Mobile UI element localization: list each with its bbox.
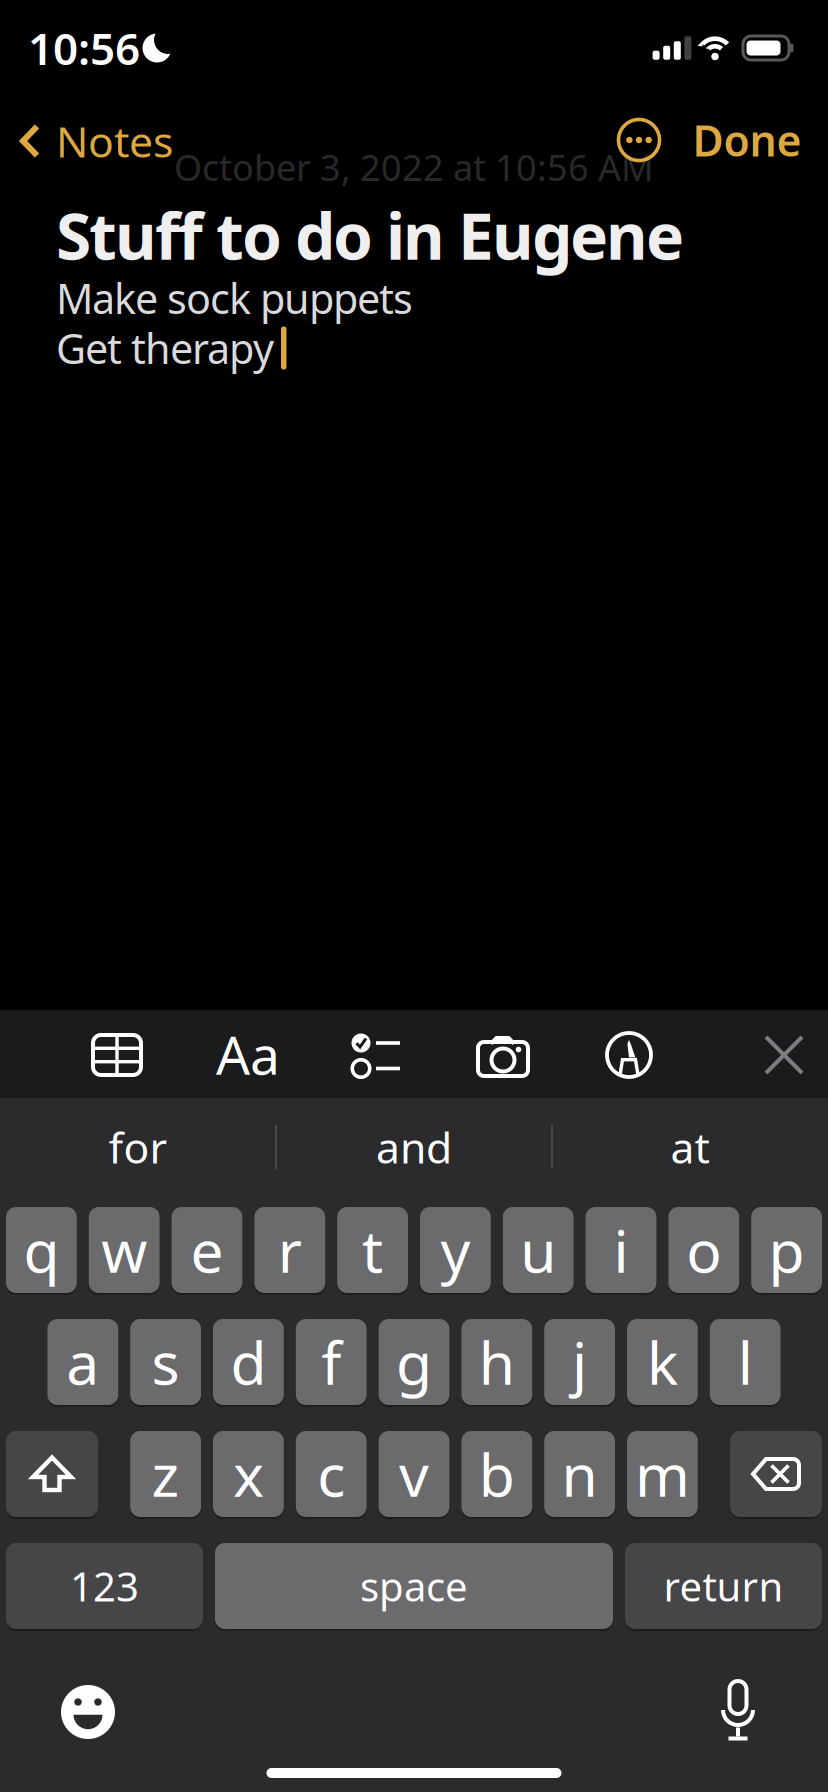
staticText: and (376, 1119, 452, 1175)
button[interactable]: Markup (599, 1025, 659, 1085)
button[interactable]: r (254, 1205, 325, 1295)
button[interactable]: w (89, 1205, 160, 1295)
button[interactable]: t (337, 1205, 408, 1295)
staticText: g (396, 1323, 432, 1401)
button[interactable]: Camera (471, 1025, 535, 1085)
button[interactable]: Insert table (87, 1025, 147, 1085)
button[interactable]: e (172, 1205, 242, 1295)
button[interactable]: p (751, 1205, 822, 1295)
staticText: return (663, 1559, 783, 1612)
button[interactable]: b (461, 1429, 532, 1519)
button[interactable]: space (215, 1541, 613, 1631)
button[interactable]: u (503, 1205, 574, 1295)
staticText: Done (692, 112, 801, 168)
staticText: at (670, 1119, 709, 1175)
button[interactable]: j (544, 1317, 615, 1407)
staticText: s (152, 1323, 180, 1401)
button[interactable]: and (279, 1102, 549, 1192)
staticText: b (479, 1435, 515, 1513)
button[interactable]: Close (754, 1025, 814, 1085)
staticText: f (321, 1323, 341, 1401)
staticText: a (66, 1323, 99, 1401)
staticText: Get therapy (56, 321, 274, 375)
staticText: w (101, 1211, 147, 1289)
button[interactable]: Checklist (346, 1025, 406, 1085)
staticText: space (360, 1559, 468, 1612)
staticText: r (278, 1211, 302, 1289)
staticText: p (769, 1211, 805, 1289)
button[interactable]: h (461, 1317, 532, 1407)
button[interactable]: i (586, 1205, 656, 1295)
staticText: t (362, 1211, 383, 1289)
button[interactable]: Delete (730, 1429, 822, 1519)
button[interactable]: y (420, 1205, 491, 1295)
staticText: u (520, 1211, 556, 1289)
button[interactable]: Format (213, 1024, 283, 1084)
button[interactable]: q (6, 1205, 77, 1295)
button[interactable]: k (627, 1317, 698, 1407)
staticText: l (738, 1323, 753, 1401)
staticText: h (479, 1323, 515, 1401)
button[interactable]: m (627, 1429, 698, 1519)
button[interactable]: Emoji (56, 1680, 120, 1744)
button[interactable]: n (544, 1429, 615, 1519)
staticText: for (108, 1119, 167, 1175)
button[interactable]: s (130, 1317, 201, 1407)
staticText: d (230, 1323, 266, 1401)
staticText: x (233, 1435, 264, 1513)
button[interactable]: return (625, 1541, 822, 1631)
staticText: j (572, 1323, 587, 1401)
staticText: October 3, 2022 at 10:56 AM (174, 143, 654, 191)
button[interactable]: f (296, 1317, 367, 1407)
button[interactable]: at (555, 1102, 825, 1192)
button[interactable]: z (130, 1429, 201, 1519)
staticText: y (440, 1211, 470, 1289)
button[interactable]: v (379, 1429, 449, 1519)
staticText: i (613, 1211, 628, 1289)
button[interactable]: o (668, 1205, 739, 1295)
staticText: 123 (70, 1559, 139, 1612)
staticText: k (647, 1323, 678, 1401)
button[interactable]: c (296, 1429, 367, 1519)
button[interactable]: Dictate (713, 1682, 763, 1742)
button[interactable]: g (379, 1317, 449, 1407)
staticText: q (23, 1211, 59, 1289)
button[interactable]: Back (19, 119, 173, 163)
button[interactable]: Done (692, 116, 801, 164)
button[interactable]: l (710, 1317, 781, 1407)
button[interactable]: More (615, 116, 663, 164)
staticText: Stuff to do in Eugene (56, 192, 684, 277)
staticText: z (152, 1435, 180, 1513)
staticText: 10:56 (28, 19, 140, 77)
button[interactable]: a (47, 1317, 118, 1407)
button[interactable]: 123 (6, 1541, 203, 1631)
staticText: v (399, 1435, 429, 1513)
button[interactable]: Shift (6, 1429, 98, 1519)
staticText: c (317, 1435, 345, 1513)
staticText: n (562, 1435, 598, 1513)
staticText: e (190, 1211, 223, 1289)
staticText: Aa (216, 1019, 280, 1089)
staticText: o (686, 1211, 721, 1289)
button[interactable]: for (3, 1102, 273, 1192)
button[interactable]: d (213, 1317, 284, 1407)
staticText: Notes (56, 113, 173, 169)
staticText: m (635, 1435, 690, 1513)
button[interactable]: x (213, 1429, 284, 1519)
staticText: Make sock puppets (56, 271, 413, 325)
